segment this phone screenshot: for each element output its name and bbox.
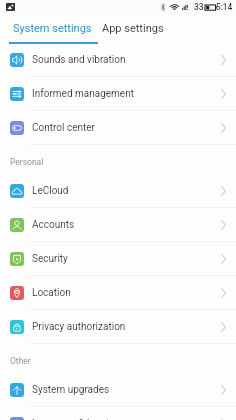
- staticText: Location: [32, 287, 71, 299]
- staticText: Control center: [32, 122, 95, 134]
- staticText: Other: [10, 356, 31, 366]
- staticText: Security: [32, 253, 68, 265]
- button[interactable]: Accounts: [0, 208, 236, 242]
- staticText: Privacy authorization: [32, 321, 126, 333]
- button[interactable]: Security: [0, 242, 236, 276]
- staticText: LeCloud: [32, 185, 69, 197]
- button[interactable]: App settings: [100, 14, 175, 43]
- other: Screenshot notification: [6, 3, 15, 11]
- button[interactable]: LeCloud: [0, 174, 236, 208]
- staticText: Sounds and vibration: [32, 54, 126, 66]
- staticText: System settings: [13, 22, 92, 35]
- staticText: 5:14: [216, 2, 233, 12]
- button[interactable]: System upgrades: [0, 373, 236, 407]
- staticText: Accounts: [32, 219, 75, 231]
- button[interactable]: Location: [0, 276, 236, 310]
- staticText: Language & input: [32, 418, 110, 420]
- button[interactable]: System settings: [0, 14, 100, 43]
- staticText: Personal: [10, 157, 44, 167]
- staticText: System upgrades: [32, 384, 110, 396]
- staticText: App settings: [102, 22, 164, 35]
- button[interactable]: Informed management: [0, 77, 236, 111]
- staticText: Informed management: [32, 88, 134, 100]
- button[interactable]: Privacy authorization: [0, 310, 236, 344]
- button[interactable]: Language & input: [0, 407, 236, 420]
- button[interactable]: Control center: [0, 111, 236, 145]
- staticText: 33: [194, 2, 204, 12]
- button[interactable]: Sounds and vibration: [0, 43, 236, 77]
